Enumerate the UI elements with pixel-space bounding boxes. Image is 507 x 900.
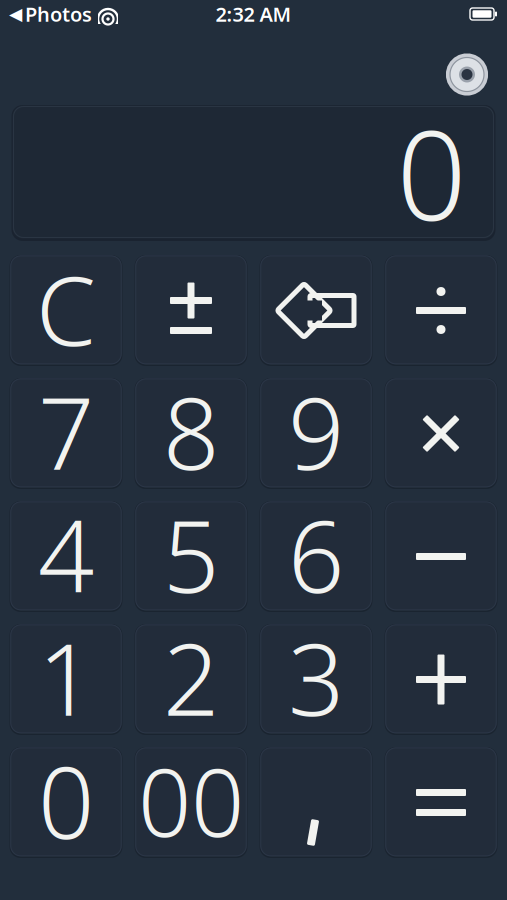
staticText: 5 [163, 489, 219, 620]
button[interactable]: 6 [259, 501, 372, 612]
button[interactable]: 8 [134, 378, 247, 489]
button[interactable]: Plus [384, 624, 497, 735]
staticText: Photos [25, 1, 92, 27]
button[interactable]: 3 [259, 624, 372, 735]
button[interactable]: Decimal comma [259, 747, 372, 858]
button[interactable]: 7 [9, 378, 122, 489]
button[interactable]: Settings [445, 36, 507, 96]
button[interactable]: 1 [9, 624, 122, 735]
staticText: 4 [38, 489, 94, 620]
button[interactable]: Equals [384, 747, 497, 858]
staticText: 8 [163, 366, 219, 497]
staticText: 3 [288, 612, 344, 743]
button[interactable]: 5 [134, 501, 247, 612]
staticText: C [36, 245, 96, 372]
button[interactable]: 00 [134, 747, 247, 858]
button[interactable]: 4 [9, 501, 122, 612]
button[interactable]: Backspace [259, 255, 372, 366]
button[interactable]: 0 [9, 747, 122, 858]
staticText: 9 [288, 366, 344, 497]
staticText: 2 [163, 612, 219, 743]
staticText: 00 [138, 738, 244, 862]
button[interactable]: 2 [134, 624, 247, 735]
staticText: 2:32 AM [215, 1, 291, 27]
staticText: 0 [38, 735, 94, 866]
button[interactable]: Divide [384, 255, 497, 366]
button[interactable]: 9 [259, 378, 372, 489]
staticText: 7 [38, 366, 94, 497]
staticText: 1 [38, 612, 94, 743]
button[interactable]: Multiply [384, 378, 497, 489]
button[interactable]: Minus [384, 501, 497, 612]
staticText: 6 [288, 489, 344, 620]
staticText: 0 [396, 92, 466, 254]
button[interactable]: Plus or minus [134, 255, 247, 366]
button[interactable]: C [9, 255, 122, 366]
staticText: ◀ [9, 4, 22, 24]
